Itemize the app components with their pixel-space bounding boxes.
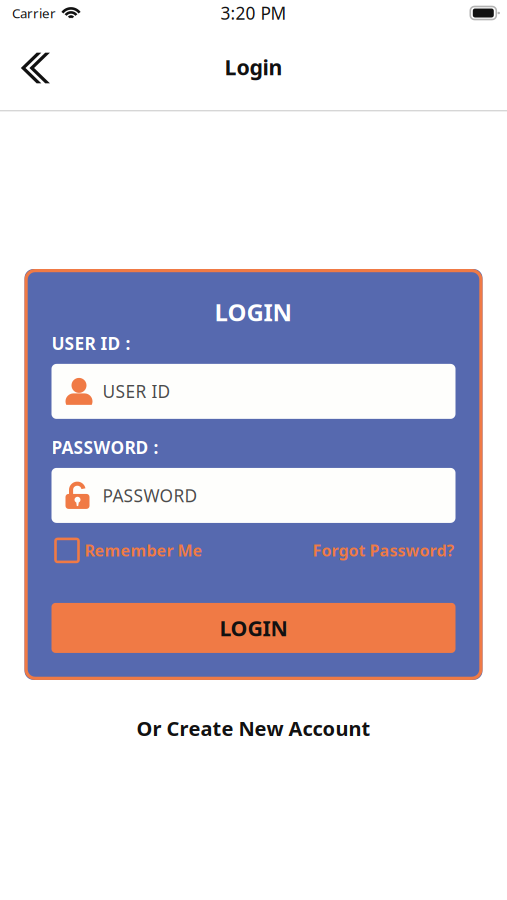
staticText: LOGIN bbox=[219, 614, 287, 642]
staticText: Remember Me bbox=[84, 540, 202, 561]
staticText: Or Create New Account bbox=[136, 715, 370, 741]
staticText: PASSWORD : bbox=[51, 436, 158, 459]
button[interactable]: LOGIN bbox=[51, 603, 455, 653]
staticText: USER ID : bbox=[51, 332, 130, 355]
staticText: 3:20 PM bbox=[220, 1, 286, 24]
button[interactable]: Remember Me bbox=[51, 539, 202, 562]
button[interactable]: Forgot Password? bbox=[312, 540, 455, 561]
staticText: Forgot Password? bbox=[312, 540, 454, 561]
staticText: Carrier bbox=[12, 4, 56, 22]
staticText: Login bbox=[224, 53, 282, 81]
staticText: USER ID bbox=[102, 380, 170, 403]
button[interactable]: Back bbox=[0, 43, 66, 93]
staticText: LOGIN bbox=[214, 296, 292, 328]
staticText: PASSWORD bbox=[102, 484, 197, 507]
